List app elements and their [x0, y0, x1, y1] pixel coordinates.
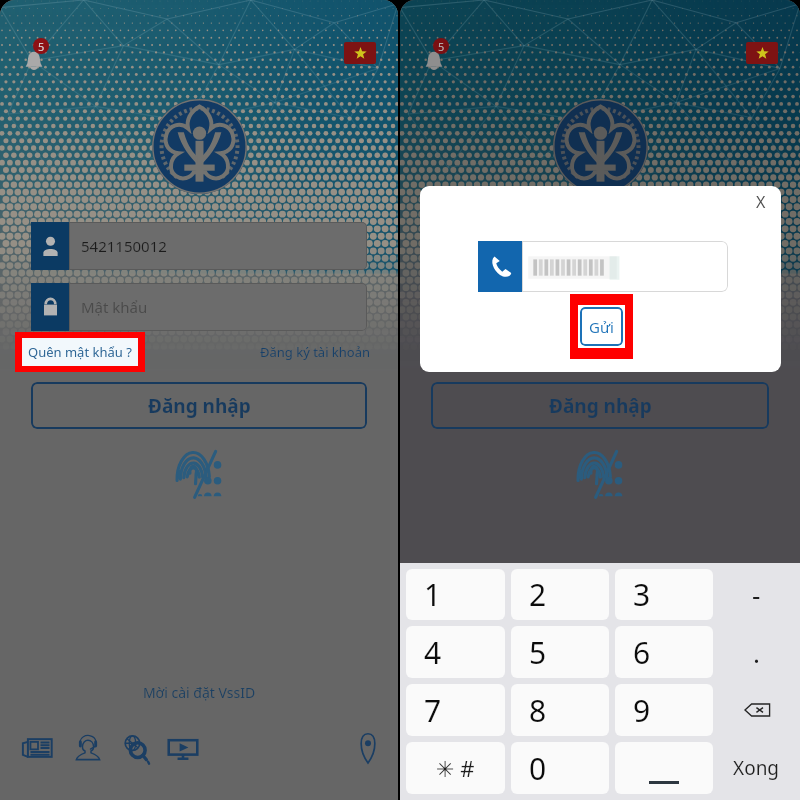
staticText: 2 [529, 574, 547, 615]
staticText: ✳ # [436, 753, 475, 783]
staticText: 7 [424, 690, 442, 731]
staticText: Gửi [589, 317, 614, 337]
button[interactable]: Gửi [580, 307, 623, 346]
button[interactable]: Đăng nhập [431, 382, 769, 429]
staticText: 9 [633, 690, 651, 731]
button[interactable] [522, 241, 728, 292]
staticText: Đăng nhập [148, 393, 251, 419]
button[interactable]: Language [746, 42, 778, 64]
button[interactable]: 6 [615, 626, 713, 678]
staticText: Mời cài đặt VssID [0, 683, 398, 702]
staticText: Mật khẩu [81, 297, 148, 317]
button[interactable]: 1 [406, 569, 505, 620]
button[interactable]: 4 [406, 626, 505, 678]
button[interactable]: 8 [511, 684, 609, 736]
staticText: 1 [424, 574, 442, 615]
staticText: 5 [529, 632, 547, 673]
button[interactable]: Fingerprint login [173, 446, 227, 500]
staticText: 5 [438, 39, 445, 54]
button[interactable]: Thông báo [15, 30, 55, 70]
button[interactable]: Close [747, 188, 775, 216]
staticText: - [752, 577, 761, 612]
staticText: Xong [733, 755, 780, 781]
button[interactable] [719, 684, 794, 736]
button[interactable] [615, 742, 713, 794]
button[interactable]: Hỗ trợ [70, 730, 106, 766]
button[interactable]: ✳ # [406, 742, 505, 794]
staticText: X [756, 191, 766, 213]
staticText: 8 [529, 690, 547, 731]
button[interactable]: 2 [511, 569, 609, 620]
staticText: 5 [38, 39, 45, 54]
button[interactable]: Thông báo [415, 30, 455, 70]
staticText: Quên mật khẩu ? [28, 343, 132, 361]
staticText: Đăng nhập [549, 393, 652, 419]
button[interactable]: 5421150012 [69, 222, 367, 270]
staticText: Đăng ký tài khoản [260, 343, 371, 361]
staticText: 6 [633, 632, 651, 673]
button[interactable]: Tra cứu [118, 730, 154, 766]
staticText: 4 [424, 632, 442, 673]
button[interactable]: Mật khẩu [69, 283, 367, 331]
button[interactable]: - [719, 569, 794, 620]
staticText: 0 [529, 748, 547, 789]
button[interactable]: 3 [615, 569, 713, 620]
button[interactable]: . [719, 626, 794, 678]
staticText: 3 [633, 574, 651, 615]
button[interactable]: Video [165, 730, 201, 766]
button[interactable]: Vị trí [350, 730, 386, 766]
button[interactable]: 5 [511, 626, 609, 678]
button[interactable]: 9 [615, 684, 713, 736]
button[interactable]: Language [344, 42, 376, 64]
button[interactable]: Đăng nhập [31, 382, 367, 429]
button[interactable]: Fingerprint login [574, 446, 628, 500]
button[interactable]: Quên mật khẩu ? [22, 338, 138, 366]
button[interactable]: 0 [511, 742, 609, 794]
button[interactable]: Tin tức [20, 730, 56, 766]
button[interactable]: Đăng ký tài khoản [260, 343, 371, 361]
staticText: . [753, 635, 760, 670]
button[interactable]: 7 [406, 684, 505, 736]
button[interactable]: Xong [719, 742, 794, 794]
staticText: 5421150012 [81, 236, 167, 256]
